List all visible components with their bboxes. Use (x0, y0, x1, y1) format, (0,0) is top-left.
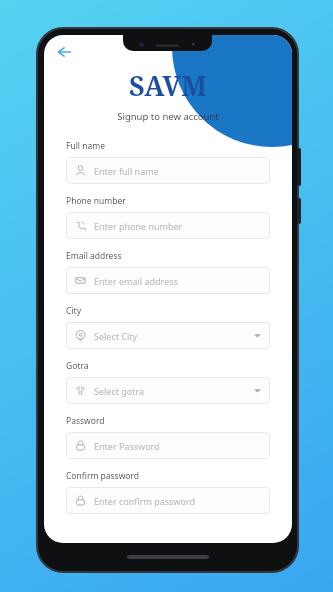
staticText: Phone number (66, 195, 126, 207)
button[interactable]: Enter confirm password (66, 487, 270, 514)
button[interactable]: Back (51, 39, 77, 65)
staticText: Password (66, 415, 105, 427)
staticText: City (66, 305, 81, 317)
staticText: Select gotra (94, 385, 145, 397)
staticText: Select City (94, 330, 138, 342)
staticText: Enter Password (94, 440, 160, 452)
staticText: Enter email address (94, 275, 178, 287)
staticText: Full name (66, 140, 106, 152)
button[interactable]: Select City (66, 322, 270, 349)
staticText: Gotra (66, 360, 89, 372)
button[interactable]: Enter Password (66, 432, 270, 459)
staticText: Enter confirm password (94, 495, 195, 507)
button[interactable]: Select gotra (66, 377, 270, 404)
staticText: Enter full name (94, 165, 159, 177)
button[interactable]: Enter full name (66, 157, 270, 184)
staticText: Confirm password (66, 470, 140, 482)
staticText: Enter phone number (94, 220, 183, 232)
staticText: Email address (66, 250, 122, 262)
button[interactable]: Enter email address (66, 267, 270, 294)
staticText: Signup to new account (44, 110, 292, 123)
staticText: SAVM (44, 67, 292, 104)
button[interactable]: Enter phone number (66, 212, 270, 239)
